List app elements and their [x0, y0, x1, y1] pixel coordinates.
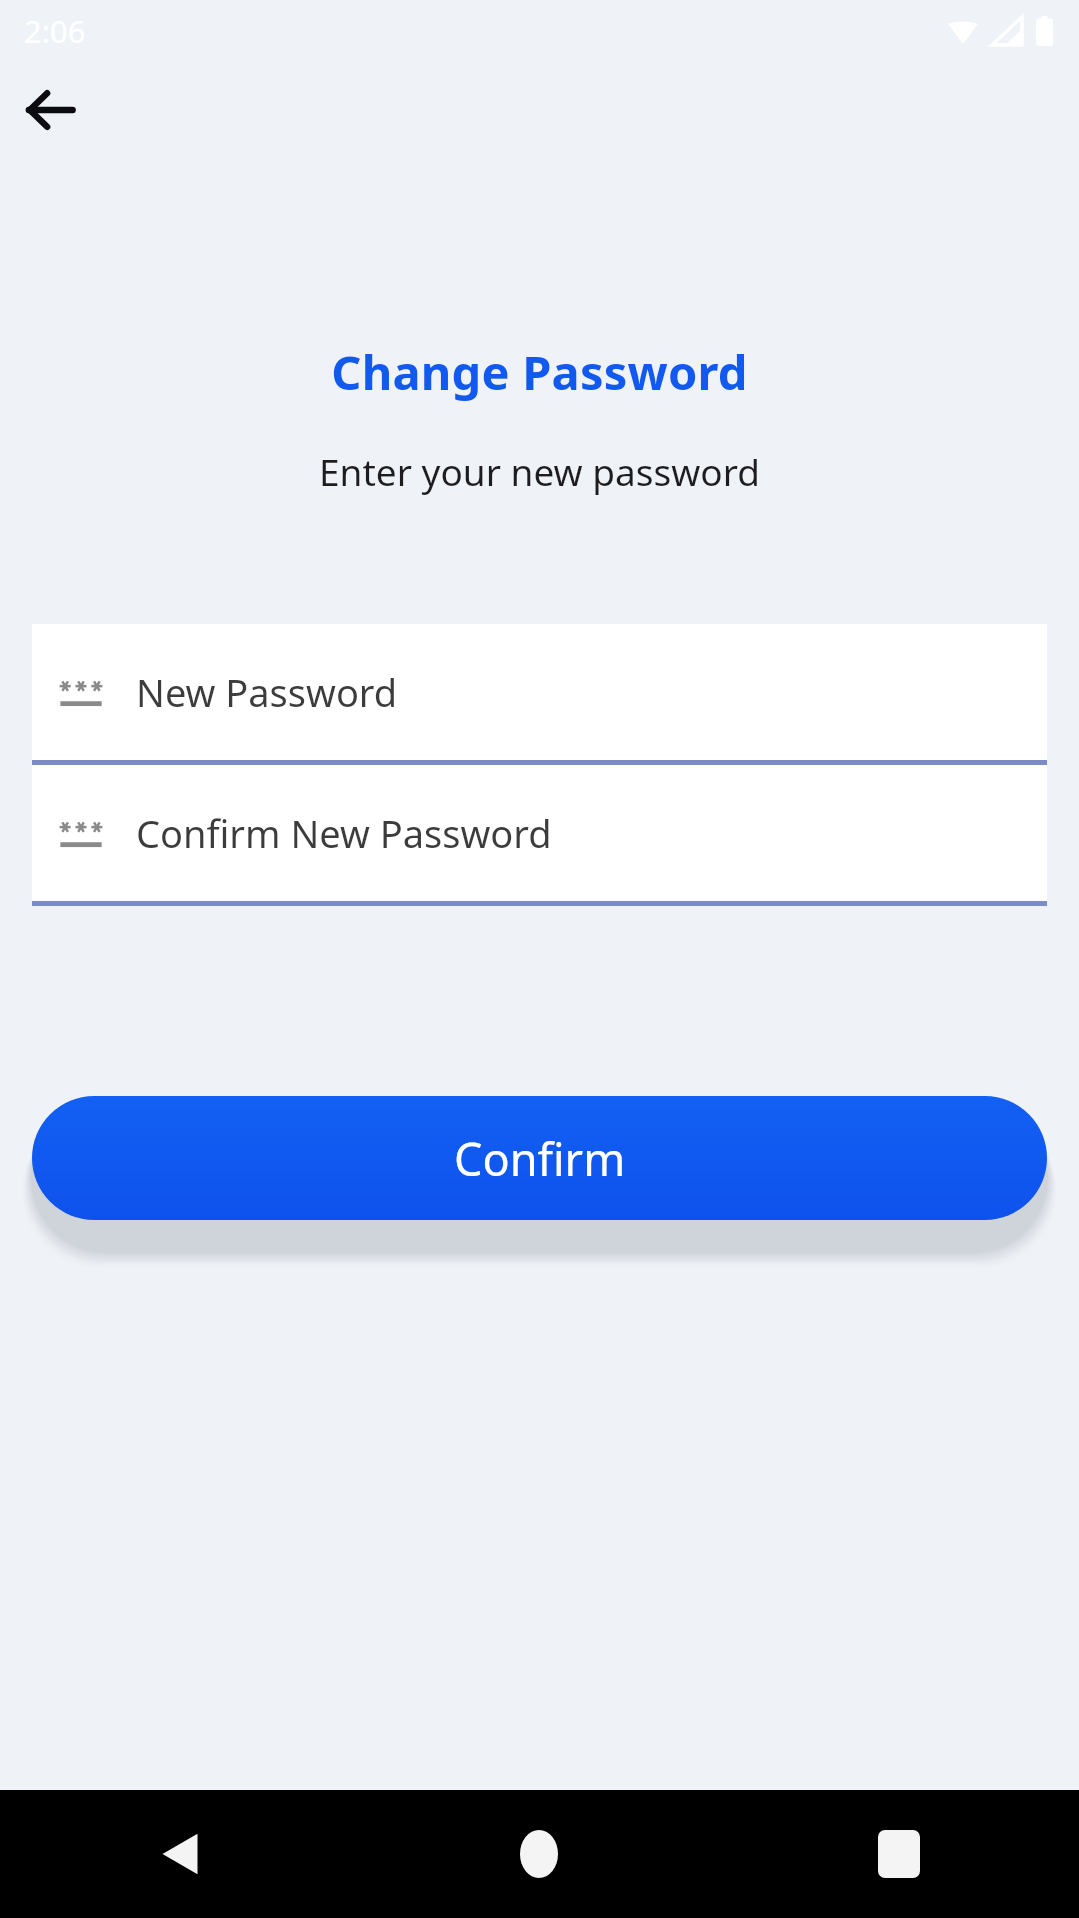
staticText: Confirm New Password	[136, 807, 552, 859]
button[interactable]: Confirm	[32, 1096, 1047, 1220]
button[interactable]: Confirm New Password	[32, 765, 1047, 906]
button[interactable]: New Password	[32, 624, 1047, 765]
button[interactable]: Recent apps	[719, 1790, 1079, 1918]
staticText: Enter your new password	[0, 446, 1079, 496]
staticText: 2:06	[24, 10, 86, 52]
button[interactable]: Back	[0, 1790, 359, 1918]
button[interactable]: Home	[359, 1790, 719, 1918]
staticText: Confirm	[454, 1128, 626, 1189]
staticText: New Password	[136, 666, 398, 718]
button[interactable]: Back	[18, 78, 82, 142]
staticText: Change Password	[0, 340, 1079, 404]
